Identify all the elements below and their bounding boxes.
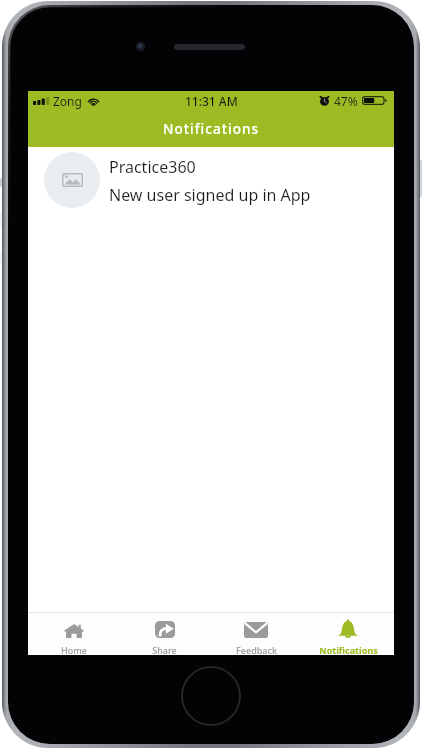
staticText: 47% <box>334 93 358 109</box>
button[interactable]: Notifications <box>302 613 394 655</box>
staticText: Share <box>152 644 177 655</box>
button[interactable]: Share <box>119 613 210 655</box>
staticText: Zong <box>53 93 82 109</box>
staticText: New user signed up in App <box>109 184 311 206</box>
button[interactable]: Notifications <box>28 110 394 147</box>
button[interactable]: Home <box>28 613 119 655</box>
staticText: Home <box>61 644 87 655</box>
staticText: 11:31 AM <box>185 93 238 109</box>
button[interactable]: Feedback <box>210 613 302 655</box>
staticText: Notifications <box>319 644 378 655</box>
staticText: Practice360 <box>109 156 196 178</box>
staticText: Feedback <box>236 644 277 655</box>
staticText: Notifications <box>163 120 260 138</box>
button[interactable]: Practice360 <box>28 147 394 213</box>
